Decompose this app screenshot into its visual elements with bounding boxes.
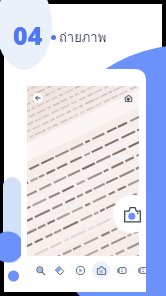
button[interactable]: Camera [92,261,110,279]
button[interactable]: Search [31,261,49,279]
button[interactable]: Camera [123,93,134,104]
button[interactable]: Back [33,93,43,103]
staticText: ถ่ายภาพ [59,27,107,48]
button[interactable]: Places [112,261,130,279]
button[interactable]: Translate [50,261,68,279]
button[interactable]: Dining [133,261,146,279]
button[interactable]: Take photo [113,195,146,233]
staticText: 04 [13,18,43,52]
button[interactable]: Homework [71,261,89,279]
